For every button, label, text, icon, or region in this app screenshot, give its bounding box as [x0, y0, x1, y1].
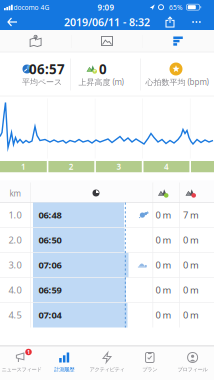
staticText: 0 m [155, 259, 171, 271]
staticText: プラン [142, 366, 157, 373]
staticText: 3 [116, 161, 121, 172]
button[interactable]: Map [1, 30, 71, 52]
button[interactable]: Back [4, 14, 21, 30]
button[interactable]: Splits [143, 30, 213, 52]
staticText: 0 m [183, 259, 199, 271]
staticText: ニュースフィード [1, 366, 41, 373]
staticText: 2019/06/11 - 8:32 [64, 15, 150, 29]
button[interactable]: More [188, 17, 205, 27]
button[interactable]: アクティビティ [86, 345, 128, 379]
button[interactable]: プロフィール [171, 345, 214, 379]
staticText: 07:06 [38, 259, 61, 271]
button[interactable]: ニュースフィード [0, 345, 43, 379]
staticText: 4 [164, 161, 169, 172]
staticText: 平均ペース [22, 77, 62, 87]
staticText: 0 m [155, 209, 171, 221]
staticText: 06:50 [38, 234, 61, 246]
staticText: 0 [99, 60, 107, 78]
staticText: 3.0 [8, 259, 21, 271]
staticText: 07:04 [38, 309, 61, 321]
staticText: 上昇高度 (m) [78, 77, 123, 87]
staticText: 06:59 [38, 284, 61, 296]
staticText: 65% [169, 3, 183, 12]
staticText: 心拍数平均 (bpm) [145, 77, 208, 87]
button[interactable]: Photos [72, 30, 142, 52]
staticText: docomo [13, 3, 38, 12]
staticText: 4G [40, 3, 49, 12]
staticText: 7 m [183, 209, 199, 221]
staticText: 0 m [155, 284, 171, 296]
staticText: 0 m [155, 234, 171, 246]
button[interactable]: Share [163, 14, 177, 30]
staticText: プロフィール [178, 366, 208, 373]
staticText: 4.5 [8, 309, 21, 321]
staticText: 9:09 [97, 2, 114, 13]
staticText: 06:48 [38, 209, 61, 221]
staticText: 1 [27, 348, 30, 356]
staticText: 0 m [183, 309, 199, 321]
staticText: 1.0 [8, 209, 21, 221]
staticText: 0 m [183, 284, 199, 296]
button[interactable]: 計測履歴 [43, 345, 86, 379]
staticText: 06:57 [29, 60, 65, 78]
staticText: 計測履歴 [54, 366, 74, 373]
button[interactable]: プラン [128, 345, 171, 379]
staticText: 0 m [155, 309, 171, 321]
staticText: km [9, 188, 20, 199]
staticText: + [93, 68, 96, 75]
staticText: 1 [21, 161, 26, 172]
staticText: 2.0 [8, 234, 21, 246]
staticText: 0 m [183, 234, 199, 246]
staticText: 4.0 [8, 284, 21, 296]
staticText: 2 [69, 161, 74, 172]
staticText: アクティビティ [89, 366, 124, 373]
